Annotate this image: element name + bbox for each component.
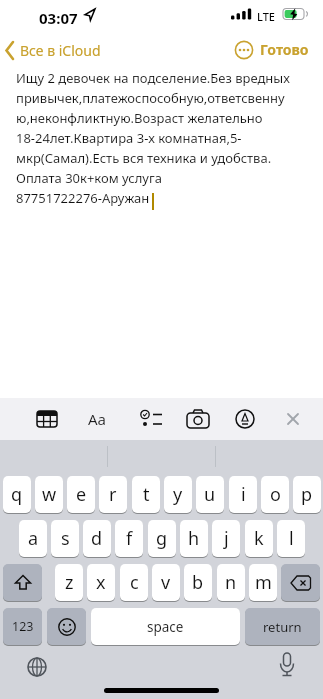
staticText: s [61, 526, 70, 551]
button[interactable] [82, 398, 116, 440]
button[interactable] [47, 608, 86, 645]
staticText: LTE [257, 9, 275, 24]
button[interactable]: f [115, 520, 143, 557]
button[interactable] [134, 398, 168, 440]
button[interactable]: h [180, 520, 208, 557]
staticText: j [224, 526, 229, 551]
staticText: k [254, 526, 264, 551]
button[interactable] [276, 398, 310, 440]
button[interactable]: q [3, 476, 31, 513]
button[interactable]: o [261, 476, 289, 513]
button[interactable]: l [277, 520, 305, 557]
staticText: Готово [260, 40, 309, 59]
button[interactable]: y [164, 476, 192, 513]
button[interactable]: space [91, 608, 240, 645]
button[interactable] [22, 652, 52, 682]
staticText: r [109, 482, 117, 507]
staticText: m [255, 570, 272, 595]
staticText: 123 [12, 618, 34, 635]
staticText: d [91, 526, 103, 551]
staticText: Aa [88, 409, 107, 429]
staticText: g [156, 526, 168, 551]
staticText: w [42, 482, 57, 507]
staticText: x [96, 570, 106, 595]
button[interactable]: k [245, 520, 273, 557]
button[interactable] [181, 398, 215, 440]
button[interactable]: j [212, 520, 240, 557]
button[interactable]: b [184, 564, 212, 601]
button[interactable] [281, 564, 320, 601]
staticText: y [173, 482, 183, 507]
staticText: return [263, 618, 302, 636]
button[interactable]: c [120, 564, 148, 601]
staticText: Ищу 2 девочек на подселение.Без вредных … [16, 69, 290, 207]
button[interactable] [3, 564, 42, 601]
button[interactable]: n [217, 564, 245, 601]
button[interactable] [272, 650, 302, 682]
button[interactable]: i [229, 476, 257, 513]
button[interactable]: u [196, 476, 224, 513]
button[interactable]: e [67, 476, 95, 513]
button[interactable] [228, 398, 262, 440]
staticText: space [147, 618, 184, 636]
staticText: b [192, 570, 204, 595]
staticText: h [188, 526, 200, 551]
staticText: l [289, 526, 294, 551]
staticText: f [126, 526, 133, 551]
staticText: o [270, 482, 281, 507]
staticText: q [11, 482, 23, 507]
button[interactable]: s [51, 520, 79, 557]
button[interactable]: w [35, 476, 63, 513]
button[interactable]: return [245, 608, 320, 645]
staticText: z [65, 570, 74, 595]
button[interactable]: r [99, 476, 127, 513]
staticText: a [28, 526, 39, 551]
staticText: Все в iCloud [20, 41, 101, 60]
staticText: t [143, 482, 150, 507]
button[interactable]: z [55, 564, 83, 601]
button[interactable]: t [132, 476, 160, 513]
button[interactable]: Готово [260, 40, 309, 59]
staticText: 03:07 [39, 8, 78, 28]
staticText: i [241, 482, 246, 507]
button[interactable] [234, 40, 254, 60]
button[interactable]: g [148, 520, 176, 557]
button[interactable]: m [249, 564, 277, 601]
staticText: n [225, 570, 237, 595]
staticText: c [130, 570, 139, 595]
button[interactable]: x [87, 564, 115, 601]
staticText: u [204, 482, 216, 507]
button[interactable]: Все в iCloud [0, 38, 120, 64]
button[interactable]: a [19, 520, 47, 557]
button[interactable]: v [152, 564, 180, 601]
button[interactable]: 123 [3, 608, 42, 645]
button[interactable]: d [83, 520, 111, 557]
staticText: v [161, 570, 171, 595]
button[interactable] [30, 398, 64, 440]
staticText: p [301, 482, 313, 507]
button[interactable]: p [293, 476, 321, 513]
staticText: e [76, 482, 87, 507]
